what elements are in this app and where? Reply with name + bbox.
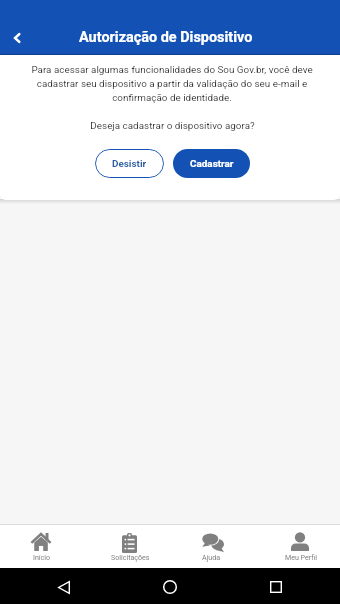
staticText: Ajuda [202,553,221,561]
staticText: Autorização de Dispositivo [79,29,253,46]
button[interactable]: Desistir [95,149,164,178]
staticText: Solicitações [111,553,150,561]
staticText: Desistir [112,158,147,170]
button[interactable]: Início [158,575,182,599]
button[interactable]: Voltar [52,575,76,599]
staticText: Início [33,553,51,561]
button[interactable]: Cadastrar [173,149,250,178]
button[interactable]: Recentes [264,575,288,599]
staticText: Deseja cadastrar o dispositivo agora? [90,120,255,132]
button[interactable]: Voltar [5,26,29,50]
button[interactable]: Solicitações [85,525,170,568]
staticText: Meu Perfil [285,553,317,561]
staticText: Cadastrar [190,158,234,170]
button[interactable]: Meu Perfil [255,525,340,568]
button[interactable]: Início [0,525,85,568]
button[interactable]: Ajuda [170,525,255,568]
staticText: Para acessar algumas funcionalidades do … [27,64,317,103]
